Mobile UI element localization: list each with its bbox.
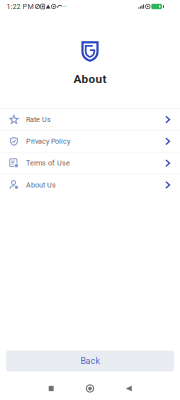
staticText: 1:22 PM [6, 2, 33, 11]
button[interactable]: Rate Us [0, 109, 180, 130]
staticText: ·· [63, 3, 67, 10]
button[interactable]: Privacy Policy [0, 131, 180, 152]
staticText: Back [80, 356, 99, 366]
staticText: About Us [26, 181, 56, 189]
staticText: Rate Us [26, 115, 51, 124]
staticText: Terms of Use [26, 159, 70, 167]
button[interactable]: Terms of Use [0, 153, 180, 174]
button[interactable]: Back [109, 375, 148, 400]
button[interactable]: About Us [0, 174, 180, 195]
button[interactable]: Home [71, 375, 109, 400]
staticText: About [73, 72, 106, 86]
staticText: Privacy Policy [26, 137, 70, 145]
button[interactable]: Back [6, 350, 174, 371]
button[interactable]: Recent apps [32, 375, 71, 400]
